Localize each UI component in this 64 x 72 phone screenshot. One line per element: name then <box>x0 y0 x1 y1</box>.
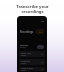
button[interactable]: Team sync <box>19 51 45 57</box>
button[interactable]: Record <box>37 45 44 49</box>
staticText: Team sync <box>21 52 32 55</box>
staticText: Interview <box>21 60 31 63</box>
staticText: Pro <box>39 31 42 33</box>
button[interactable]: Interview <box>19 59 45 65</box>
button[interactable]: Voice memo <box>19 67 45 71</box>
staticText: Recordings <box>20 30 34 33</box>
staticText: Voice memo <box>21 67 34 70</box>
button[interactable]: Upgrade to Pro <box>36 29 44 34</box>
staticText: 9:41 <box>20 20 24 23</box>
staticText: Transcribe your recordings <box>16 4 49 14</box>
